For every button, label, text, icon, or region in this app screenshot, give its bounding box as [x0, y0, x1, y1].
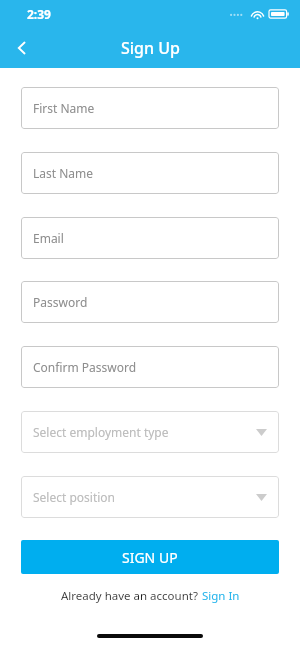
button[interactable]: Last Name [21, 152, 279, 194]
button[interactable]: Password [21, 281, 279, 323]
staticText: Select position [33, 489, 116, 505]
staticText: Sign Up [121, 37, 180, 59]
staticText: Select employment type [33, 424, 169, 440]
staticText: 2:39 [27, 6, 51, 22]
button[interactable]: Confirm Password [21, 346, 279, 388]
button[interactable]: Back [6, 32, 38, 64]
staticText: Last Name [33, 165, 94, 181]
button[interactable]: Select employment type [21, 411, 279, 453]
staticText: SIGN UP [122, 548, 178, 567]
button[interactable]: Email [21, 217, 279, 259]
staticText: Confirm Password [33, 359, 137, 375]
staticText: Email [33, 230, 64, 246]
staticText: First Name [33, 100, 95, 116]
button[interactable]: Sign In [202, 588, 240, 604]
button[interactable]: SIGN UP [21, 540, 279, 574]
button[interactable]: First Name [21, 87, 279, 129]
staticText: Already have an account? [61, 588, 198, 604]
staticText: Password [33, 294, 88, 310]
staticText: Sign In [202, 588, 240, 604]
button[interactable]: Select position [21, 476, 279, 518]
